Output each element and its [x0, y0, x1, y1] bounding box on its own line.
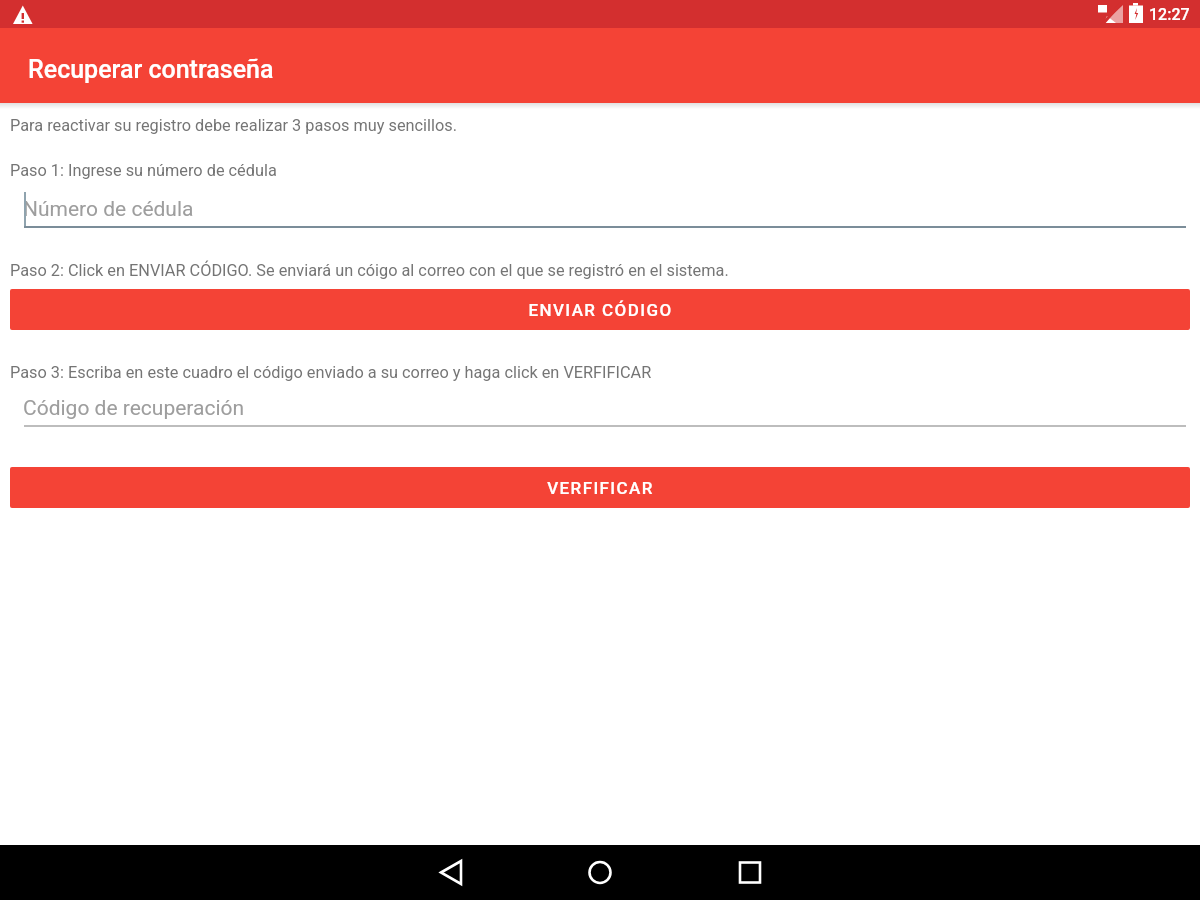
- staticText: Paso 3: Escriba en este cuadro el código…: [10, 363, 652, 382]
- button[interactable]: Back: [375, 845, 525, 900]
- staticText: Paso 1: Ingrese su número de cédula: [10, 161, 277, 180]
- button[interactable]: ENVIAR CÓDIGO: [10, 289, 1190, 330]
- staticText: Recuperar contraseña: [28, 55, 274, 84]
- staticText: VERFIFICAR: [547, 478, 654, 498]
- staticText: Paso 2: Click en ENVIAR CÓDIGO. Se envia…: [10, 261, 729, 280]
- button[interactable]: Número de cédula: [24, 192, 1186, 228]
- button[interactable]: Home: [525, 845, 675, 900]
- staticText: Para reactivar su registro debe realizar…: [10, 116, 457, 135]
- staticText: Número de cédula: [23, 197, 194, 222]
- staticText: 12:27: [1149, 5, 1190, 24]
- button[interactable]: Código de recuperación: [24, 391, 1186, 427]
- button[interactable]: Recent apps: [675, 845, 825, 900]
- button[interactable]: VERFIFICAR: [10, 467, 1190, 508]
- staticText: Código de recuperación: [23, 396, 245, 421]
- staticText: ENVIAR CÓDIGO: [528, 300, 673, 320]
